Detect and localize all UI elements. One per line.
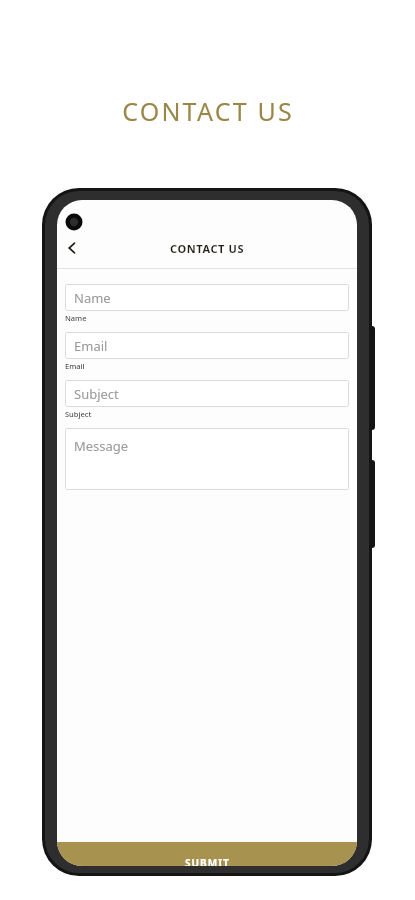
staticText: Subject	[65, 409, 92, 419]
button[interactable]: SUBMIT	[57, 842, 357, 866]
staticText: Message	[74, 437, 129, 455]
staticText: Email	[74, 337, 108, 355]
button[interactable]: Back	[57, 233, 87, 263]
button[interactable]: Name	[65, 284, 349, 311]
button[interactable]: Email	[65, 332, 349, 359]
staticText: SUBMIT	[185, 856, 230, 866]
staticText: CONTACT US	[122, 94, 294, 128]
staticText: CONTACT US	[170, 241, 245, 256]
staticText: Email	[65, 361, 85, 371]
staticText: Name	[74, 289, 111, 307]
button[interactable]: Subject	[65, 380, 349, 407]
button[interactable]: Message	[65, 428, 349, 490]
staticText: Name	[65, 313, 87, 323]
staticText: Subject	[74, 385, 119, 403]
